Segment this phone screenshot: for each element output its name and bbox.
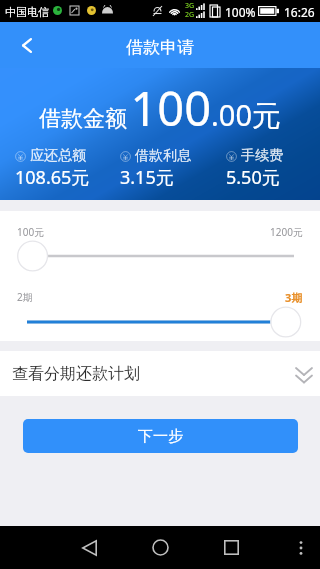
staticText: 100元 [17, 225, 45, 238]
staticText: 2期 [17, 290, 33, 303]
staticText: 下一步 [138, 427, 183, 446]
staticText: 借款申请 [126, 37, 194, 58]
staticText: 3G [185, 1, 195, 11]
staticText: 108.65元 [15, 165, 90, 190]
staticText: 查看分期还款计划 [12, 364, 140, 384]
staticText: 借款金额 100.00元 [39, 76, 281, 140]
staticText: 5.50元 [226, 165, 280, 190]
staticText: 100% [225, 4, 256, 20]
staticText: 1200元 [270, 225, 303, 238]
button[interactable] [0, 306, 320, 338]
button[interactable]: Recents [209, 526, 254, 569]
button[interactable]: 查看分期还款计划 [0, 351, 320, 396]
button[interactable] [0, 240, 320, 272]
button[interactable]: Back [67, 526, 112, 569]
button[interactable]: Home [138, 526, 183, 569]
button[interactable]: 下一步 [23, 419, 298, 453]
staticText: 16:26 [284, 4, 315, 20]
staticText: 中国电信 [5, 5, 49, 19]
staticText: 手续费 [241, 147, 283, 165]
staticText: 应还总额 [30, 147, 86, 165]
staticText: 3.15元 [120, 165, 174, 190]
staticText: 借款利息 [135, 147, 191, 165]
button[interactable]: Back [5, 23, 49, 67]
staticText: 2G [185, 10, 195, 20]
button[interactable]: More options [282, 526, 320, 569]
staticText: 3期 [285, 290, 303, 303]
